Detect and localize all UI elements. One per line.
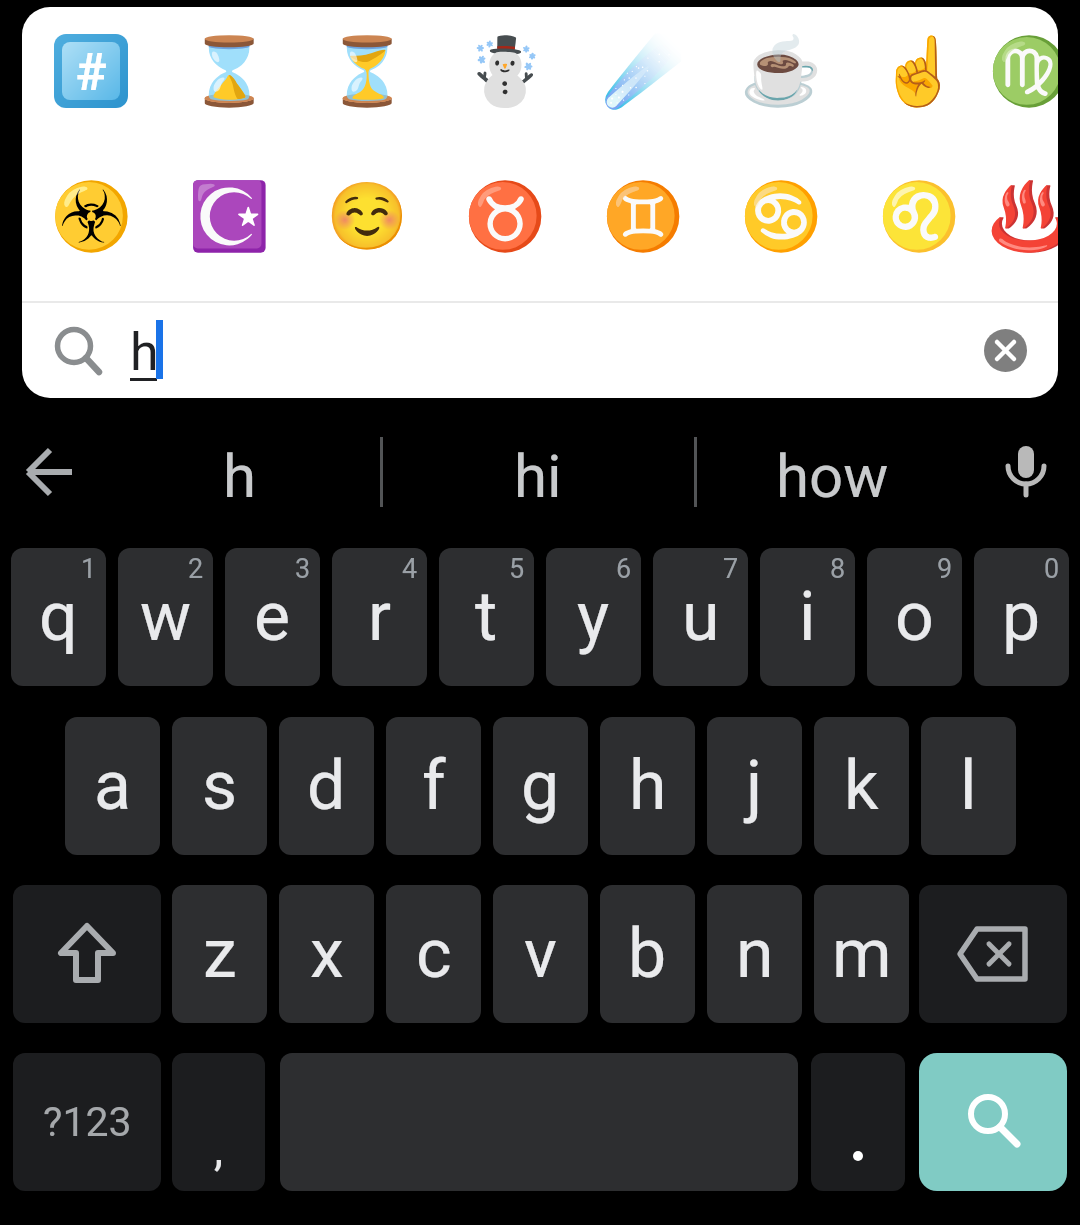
button[interactable]: v (493, 885, 588, 1023)
button[interactable]: l (921, 717, 1016, 855)
button[interactable] (990, 436, 1062, 508)
staticText: 0 (1044, 553, 1060, 585)
staticText: hi (514, 441, 562, 511)
staticText: ♋ (740, 178, 823, 255)
button[interactable]: o (867, 548, 962, 686)
staticText: i (799, 577, 816, 657)
button[interactable]: j (707, 717, 802, 855)
button[interactable]: ♍ (988, 11, 1058, 131)
staticText: s (202, 746, 238, 826)
button[interactable]: ♊ (574, 156, 712, 276)
staticText: # (76, 42, 107, 100)
button[interactable]: z (172, 885, 267, 1023)
staticText: k (844, 746, 879, 826)
button[interactable]: w (118, 548, 213, 686)
button[interactable]: ☣ (22, 156, 160, 276)
button[interactable]: r (332, 548, 427, 686)
button[interactable] (13, 885, 161, 1023)
staticText: e (254, 577, 291, 657)
staticText: ♉ (464, 178, 547, 255)
button[interactable]: k (814, 717, 909, 855)
button[interactable]: h (600, 717, 695, 855)
button[interactable]: ?123 (13, 1053, 161, 1191)
button[interactable]: a (65, 717, 160, 855)
button[interactable]: f (386, 717, 481, 855)
staticText: 7 (723, 553, 739, 585)
button[interactable]: y (546, 548, 641, 686)
staticText: ⌛ (188, 33, 271, 110)
button[interactable] (919, 1053, 1067, 1191)
button[interactable]: u (653, 548, 748, 686)
staticText: m (832, 914, 892, 994)
staticText: l (960, 746, 977, 826)
button[interactable]: # (22, 11, 160, 131)
button[interactable]: ☃️ (436, 11, 574, 131)
button[interactable]: h (22, 303, 1058, 398)
button[interactable]: hi (384, 433, 692, 518)
button[interactable]: ♨ (988, 156, 1058, 276)
staticText: p (1002, 577, 1041, 657)
staticText: 3 (295, 553, 311, 585)
button[interactable]: ☺️ (298, 156, 436, 276)
button[interactable]: g (493, 717, 588, 855)
staticText: ♍ (988, 33, 1058, 110)
button[interactable]: b (600, 885, 695, 1023)
staticText: 6 (616, 553, 632, 585)
staticText: x (310, 914, 344, 994)
button[interactable] (919, 885, 1067, 1023)
staticText: ☪ (188, 178, 271, 255)
button[interactable]: n (707, 885, 802, 1023)
staticText: a (94, 746, 131, 826)
staticText: 1 (81, 553, 97, 585)
staticText: ♨ (988, 178, 1058, 255)
staticText: 8 (830, 553, 846, 585)
staticText: ☃️ (464, 33, 547, 110)
button[interactable]: ☪ (160, 156, 298, 276)
button[interactable]: t (439, 548, 534, 686)
staticText: ?123 (43, 1098, 132, 1146)
staticText: h (629, 746, 667, 826)
button[interactable]: s (172, 717, 267, 855)
staticText: h (223, 441, 257, 511)
button[interactable]: c (386, 885, 481, 1023)
button[interactable]: ⏳ (298, 11, 436, 131)
staticText: t (475, 577, 498, 657)
button[interactable]: ☄️ (574, 11, 712, 131)
button[interactable]: ♌ (850, 156, 988, 276)
staticText: ⏳ (326, 33, 409, 110)
staticText: b (628, 914, 667, 994)
button[interactable]: m (814, 885, 909, 1023)
staticText: y (577, 577, 610, 657)
button[interactable]: how (698, 433, 966, 518)
button[interactable]: ♋ (712, 156, 850, 276)
staticText: ☝ (878, 33, 961, 110)
button[interactable]: ♉ (436, 156, 574, 276)
button[interactable] (14, 436, 86, 508)
staticText: h (130, 322, 159, 383)
button[interactable]: d (279, 717, 374, 855)
staticText: , (214, 1122, 224, 1176)
button[interactable]: ⌛ (160, 11, 298, 131)
button[interactable]: ☕ (712, 11, 850, 131)
button[interactable]: i (760, 548, 855, 686)
button[interactable]: ☝ (850, 11, 988, 131)
staticText: o (895, 577, 934, 657)
staticText: how (776, 441, 889, 511)
button[interactable]: e (225, 548, 320, 686)
staticText: z (203, 914, 237, 994)
staticText: ☣ (50, 178, 133, 255)
staticText: v (524, 914, 557, 994)
staticText: j (746, 746, 763, 826)
button[interactable]: h (100, 433, 380, 518)
staticText: u (682, 577, 720, 657)
button[interactable]: p (974, 548, 1069, 686)
staticText: ☕ (740, 33, 823, 110)
button[interactable] (984, 329, 1027, 372)
button[interactable]: x (279, 885, 374, 1023)
staticText: c (416, 914, 452, 994)
button[interactable] (811, 1053, 905, 1191)
button[interactable]: q (11, 548, 106, 686)
button[interactable]: , (172, 1053, 265, 1191)
staticText: 4 (402, 553, 418, 585)
